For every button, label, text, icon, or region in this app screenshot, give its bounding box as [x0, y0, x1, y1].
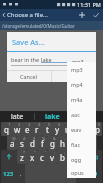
button[interactable]: Up — [0, 9, 50, 21]
button[interactable]: bear in the — [11, 56, 69, 66]
button[interactable]: p — [92, 122, 102, 136]
staticText: i — [76, 124, 79, 135]
button[interactable]: f — [37, 136, 47, 150]
button[interactable]: , — [16, 164, 25, 183]
staticText: mp4 — [71, 81, 83, 88]
button[interactable]: h — [57, 136, 67, 150]
button[interactable]: d — [27, 136, 37, 150]
button[interactable]: w — [12, 122, 22, 136]
staticText: wav — [71, 126, 82, 133]
button[interactable]: OK — [52, 71, 96, 82]
staticText: 3 — [28, 122, 31, 127]
button[interactable]: c — [37, 150, 47, 164]
staticText: u — [65, 124, 70, 135]
button[interactable]: e — [22, 122, 32, 136]
button[interactable]: n — [67, 150, 77, 164]
button[interactable]: s — [17, 136, 27, 150]
staticText: ogg — [71, 156, 82, 163]
staticText: lake — [41, 56, 52, 63]
button[interactable]: opus — [67, 167, 96, 178]
button[interactable]: aac — [67, 107, 96, 122]
button[interactable]: r — [32, 122, 42, 136]
staticText: - — [64, 136, 66, 141]
button[interactable]: j — [67, 136, 77, 150]
staticText: " — [34, 150, 36, 155]
staticText: t — [46, 124, 49, 135]
staticText: . — [80, 170, 82, 178]
button[interactable]: b — [57, 150, 67, 164]
staticText: : — [54, 150, 56, 155]
button[interactable]: k — [77, 136, 87, 150]
staticText: bear in the — [11, 56, 41, 63]
button[interactable]: g — [47, 136, 57, 150]
button[interactable]: m4a — [67, 92, 96, 107]
button[interactable]: l — [87, 136, 97, 150]
button[interactable]: mp3 — [67, 62, 96, 77]
button[interactable]: New folder — [75, 9, 89, 21]
button[interactable]: Space — [25, 164, 76, 183]
button[interactable]: x — [27, 150, 37, 164]
staticText: v — [50, 152, 55, 163]
staticText: r — [35, 124, 39, 135]
button[interactable]: Enter — [85, 164, 102, 183]
button[interactable]: u — [62, 122, 72, 136]
staticText: , — [20, 170, 22, 178]
button[interactable]: lake — [35, 111, 69, 122]
button[interactable]: Shift — [1, 150, 17, 164]
staticText: aac — [71, 111, 80, 118]
button[interactable]: 123 — [1, 164, 16, 183]
staticText: z — [20, 152, 24, 163]
button[interactable]: late — [0, 111, 35, 122]
button[interactable]: lane — [69, 111, 103, 122]
button[interactable]: Confirm — [89, 9, 103, 21]
staticText: late — [11, 112, 24, 122]
button[interactable]: z — [17, 150, 27, 164]
staticText: @ — [12, 136, 16, 141]
button[interactable]: v — [47, 150, 57, 164]
staticText: 11:31 PM — [77, 1, 101, 8]
button[interactable]: i — [72, 122, 82, 136]
staticText: * — [23, 150, 26, 155]
button[interactable]: Cancel — [7, 71, 51, 82]
staticText: Cancel — [20, 73, 38, 80]
button[interactable]: ogg — [67, 152, 96, 167]
staticText: j — [71, 138, 74, 149]
staticText: a — [10, 138, 15, 149]
staticText: q — [4, 124, 9, 135]
button[interactable]: . — [76, 164, 85, 183]
button[interactable]: flac — [67, 137, 96, 152]
button[interactable]: q — [1, 122, 12, 136]
staticText: flac — [71, 141, 81, 148]
staticText: d — [30, 138, 35, 149]
staticText: # — [23, 136, 26, 141]
button[interactable]: y — [52, 122, 62, 136]
button[interactable]: mp4 — [67, 77, 96, 92]
staticText: mp3 — [72, 58, 84, 65]
button[interactable]: File type — [72, 58, 92, 65]
staticText: lane — [79, 112, 94, 122]
button[interactable]: wav — [67, 122, 96, 137]
button[interactable]: t — [42, 122, 52, 136]
staticText: % — [42, 136, 46, 141]
staticText: w — [14, 124, 21, 135]
button[interactable]: m — [77, 150, 87, 164]
button[interactable]: Backspace — [87, 150, 102, 164]
staticText: g — [50, 138, 55, 149]
button[interactable]: /storage/emulated/0/Music/Guitar — [0, 21, 103, 30]
staticText: 1 — [8, 122, 11, 127]
button[interactable]: a — [7, 136, 17, 150]
staticText: mp3 — [71, 66, 83, 73]
staticText: h — [60, 138, 65, 149]
staticText: x — [30, 152, 35, 163]
staticText: opus — [71, 169, 84, 176]
staticText: m — [78, 152, 86, 163]
staticText: s — [20, 138, 24, 149]
